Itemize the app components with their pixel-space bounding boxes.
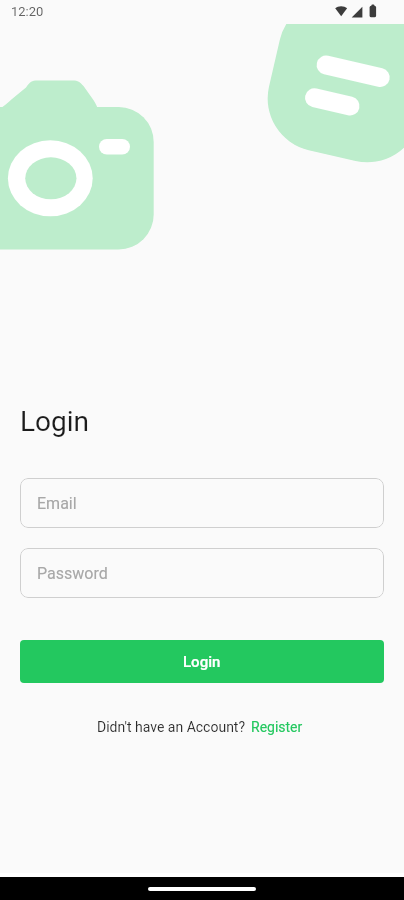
staticText: Register	[251, 719, 303, 735]
button[interactable]: Password	[20, 548, 384, 598]
button[interactable]: Register	[251, 719, 303, 735]
staticText: Password	[37, 564, 108, 583]
staticText: Login	[20, 405, 90, 438]
button[interactable]: Login	[20, 640, 384, 683]
staticText: Didn't have an Account?	[97, 719, 246, 735]
staticText: 12:20	[11, 4, 44, 19]
staticText: Login	[183, 653, 221, 671]
button[interactable]: Email	[20, 478, 384, 528]
staticText: Email	[37, 494, 77, 513]
